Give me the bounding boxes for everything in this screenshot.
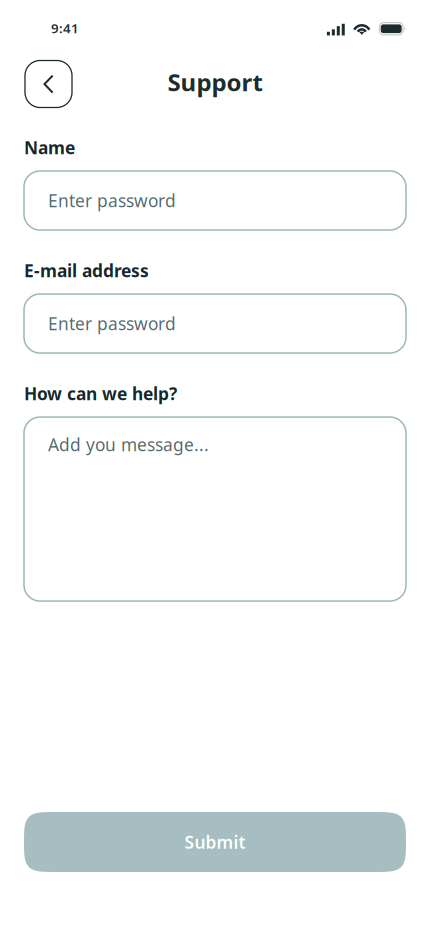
staticText: 9:41 bbox=[51, 19, 79, 37]
button[interactable]: Submit bbox=[24, 812, 406, 872]
staticText: Enter password bbox=[48, 189, 176, 212]
staticText: How can we help? bbox=[24, 382, 177, 405]
button[interactable]: Enter password bbox=[24, 294, 406, 353]
staticText: Support bbox=[167, 66, 262, 98]
staticText: Name bbox=[24, 136, 75, 159]
staticText: Enter password bbox=[48, 312, 176, 335]
button[interactable]: Back bbox=[24, 59, 71, 106]
staticText: E-mail address bbox=[24, 259, 149, 282]
button[interactable]: Enter password bbox=[24, 171, 406, 230]
staticText: Add you message... bbox=[48, 433, 209, 456]
button[interactable]: Add you message... bbox=[24, 417, 406, 601]
staticText: Submit bbox=[184, 830, 245, 853]
